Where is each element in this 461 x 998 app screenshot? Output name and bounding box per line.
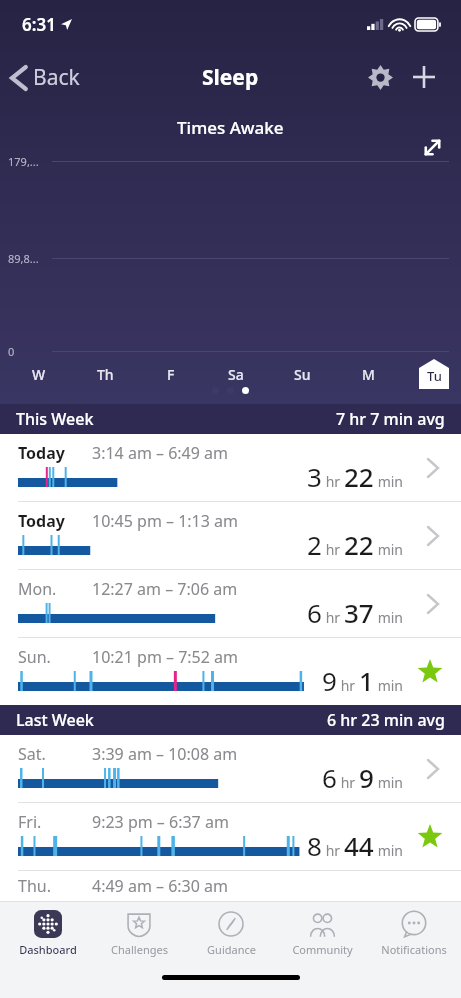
staticText: M (362, 365, 375, 384)
staticText: 9:23 pm – 6:37 am (92, 811, 229, 833)
staticText: hr (337, 676, 359, 695)
staticText: 9 (322, 663, 337, 698)
button[interactable]: Community (278, 905, 366, 961)
staticText: Sleep (202, 63, 259, 92)
staticText: Sa (228, 365, 244, 384)
button[interactable]: Add (405, 58, 443, 96)
staticText: hr (322, 841, 344, 860)
button[interactable]: Mon. (0, 570, 461, 637)
staticText: 12:27 am – 7:06 am (92, 578, 238, 600)
staticText: Thu. (18, 875, 92, 895)
staticText: Today (18, 510, 92, 532)
staticText: 89,8... (8, 251, 39, 266)
staticText: Th (97, 365, 114, 384)
button[interactable]: Back (0, 57, 90, 98)
staticText: min (374, 841, 403, 860)
staticText: 6 hr 23 min avg (327, 709, 445, 731)
staticText: 3 (307, 459, 322, 494)
staticText: hr (337, 773, 359, 792)
staticText: Dashboard (19, 942, 77, 957)
staticText: Tu (427, 367, 442, 385)
button[interactable]: Guidance (187, 905, 275, 961)
button[interactable]: Dashboard (4, 905, 92, 961)
staticText: 179,... (8, 154, 39, 169)
staticText: 2 (307, 527, 322, 562)
staticText: Challenges (111, 942, 168, 957)
staticText: hr (322, 540, 344, 559)
staticText: 10:21 pm – 7:52 am (92, 646, 239, 668)
staticText: 6:31 (22, 13, 56, 36)
staticText: 22 (344, 527, 374, 562)
staticText: 0 (8, 344, 15, 359)
button[interactable]: Today (0, 434, 461, 501)
button[interactable]: Challenges (95, 905, 183, 961)
button[interactable]: Sat. (0, 735, 461, 802)
staticText: 10:45 pm – 1:13 am (92, 510, 239, 532)
staticText: 1 (359, 663, 374, 698)
staticText: 8 (307, 828, 322, 863)
staticText: 37 (344, 595, 374, 630)
staticText: This Week (16, 408, 94, 430)
staticText: 6 (322, 760, 337, 795)
staticText: min (374, 676, 403, 695)
staticText: 3:14 am – 6:49 am (92, 442, 229, 464)
staticText: min (374, 472, 403, 491)
staticText: 9 (359, 760, 374, 795)
staticText: 6 (307, 595, 322, 630)
staticText: Mon. (18, 578, 92, 600)
button[interactable]: Settings (361, 58, 399, 96)
staticText: Guidance (207, 942, 256, 957)
staticText: hr (322, 472, 344, 491)
staticText: Back (33, 63, 80, 92)
staticText: 44 (344, 828, 374, 863)
staticText: Su (294, 365, 311, 384)
staticText: Today (18, 442, 92, 464)
staticText: min (374, 773, 403, 792)
button[interactable]: Today (0, 502, 461, 569)
staticText: 3:39 am – 10:08 am (92, 743, 238, 765)
staticText: Community (292, 942, 353, 957)
staticText: 22 (344, 459, 374, 494)
staticText: 7 hr 7 min avg (336, 408, 445, 430)
staticText: Notifications (381, 942, 447, 957)
button[interactable]: Notifications (370, 905, 458, 961)
staticText: Fri. (18, 811, 92, 833)
button[interactable]: Expand chart (415, 130, 449, 164)
staticText: W (32, 365, 46, 384)
staticText: F (167, 365, 175, 384)
staticText: Times Awake (177, 116, 284, 139)
staticText: Sun. (18, 646, 92, 668)
staticText: 4:49 am – 6:30 am (92, 875, 229, 895)
staticText: hr (322, 608, 344, 627)
button[interactable]: Sun. (0, 638, 461, 705)
staticText: min (374, 540, 403, 559)
staticText: Last Week (16, 709, 94, 731)
button[interactable]: Fri. (0, 803, 461, 870)
staticText: Sat. (18, 743, 92, 765)
staticText: min (374, 608, 403, 627)
